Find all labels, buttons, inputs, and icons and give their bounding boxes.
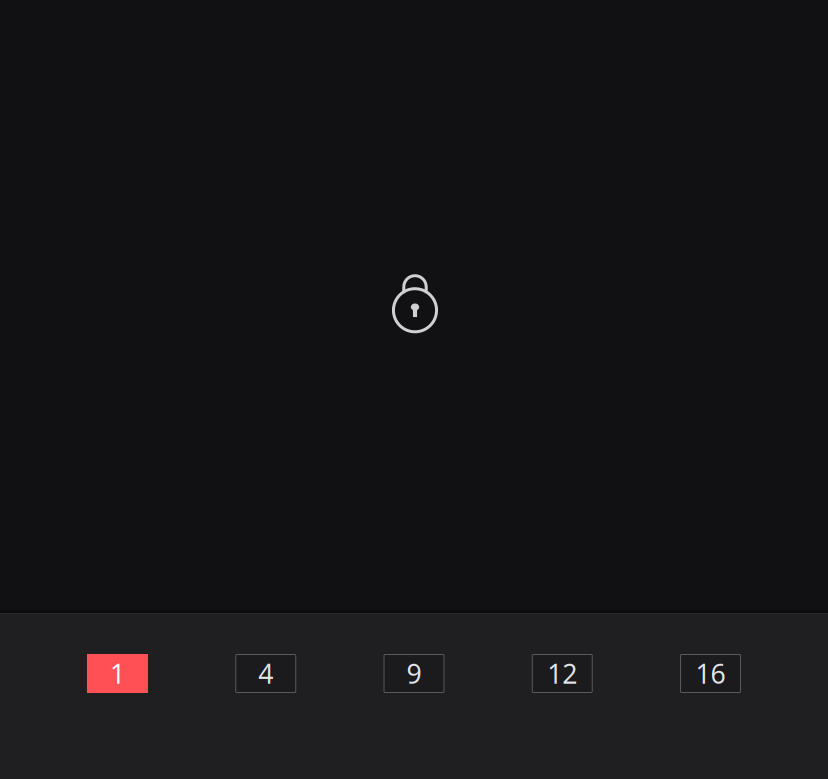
staticText: 4 <box>258 656 273 691</box>
staticText: 9 <box>406 656 421 691</box>
button[interactable]: 1 <box>87 654 148 693</box>
staticText: 16 <box>695 656 725 691</box>
button[interactable]: 12 <box>532 654 593 693</box>
button[interactable]: 16 <box>680 654 741 693</box>
staticText: 12 <box>547 656 577 691</box>
button[interactable]: 9 <box>383 654 444 693</box>
staticText: 1 <box>110 656 125 691</box>
button[interactable]: 4 <box>235 654 296 693</box>
